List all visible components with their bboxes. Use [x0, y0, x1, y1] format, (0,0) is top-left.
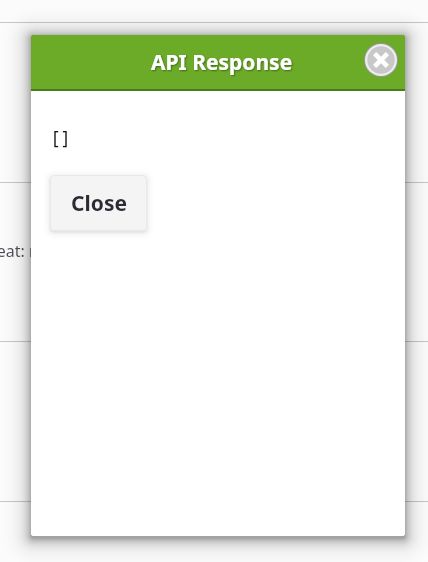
staticText: background-repeat: repeat [0, 240, 78, 262]
staticText: [] [50, 125, 71, 149]
button[interactable]: Close dialog [362, 41, 400, 79]
button[interactable]: Close [50, 175, 147, 231]
staticText: API Response [151, 48, 293, 77]
staticText: Close [71, 189, 127, 218]
